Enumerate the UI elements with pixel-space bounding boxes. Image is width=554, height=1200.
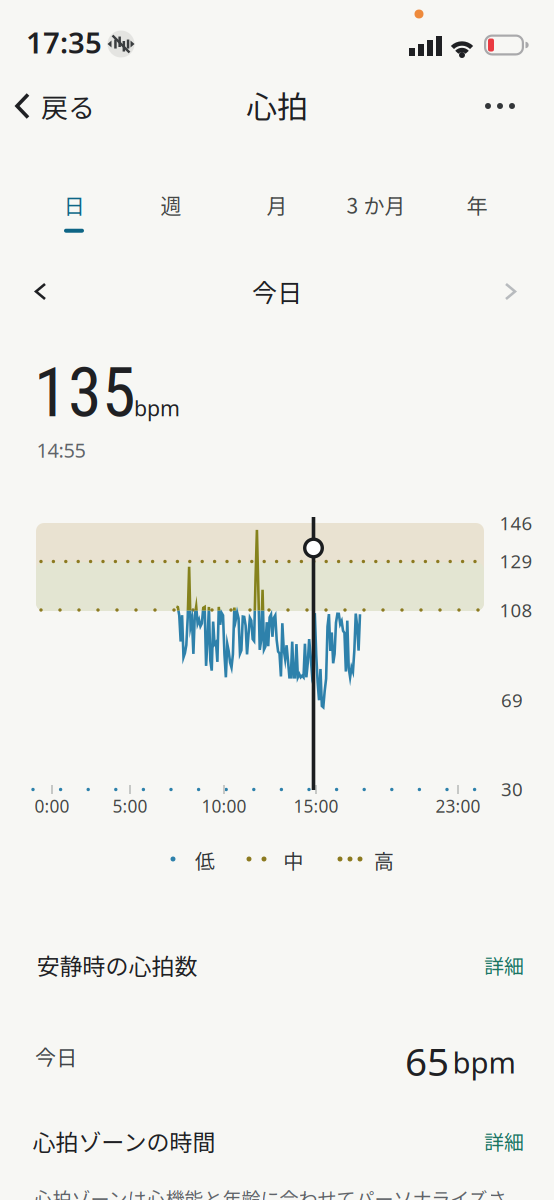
staticText: bpm <box>134 394 180 422</box>
button[interactable]: 詳細 <box>478 1120 530 1161</box>
staticText: 安静時の心拍数 <box>36 948 197 982</box>
button[interactable]: 週 <box>150 189 191 233</box>
staticText: bpm <box>452 1042 515 1081</box>
staticText: 146 <box>499 511 532 535</box>
staticText: 中 <box>283 845 303 874</box>
staticText: 日 <box>63 189 84 220</box>
staticText: 135 <box>34 353 136 433</box>
button[interactable]: 日 <box>53 189 94 233</box>
button[interactable]: 月 <box>256 189 297 233</box>
staticText: 今日 <box>35 1041 77 1071</box>
staticText: 129 <box>499 549 532 573</box>
staticText: 23:00 <box>435 794 480 817</box>
button[interactable]: その他のオプション <box>477 95 523 117</box>
staticText: 詳細 <box>484 950 524 979</box>
button[interactable]: 次の日 <box>493 272 527 312</box>
staticText: 69 <box>501 688 523 712</box>
staticText: 心拍ゾーンの時間 <box>32 1124 215 1158</box>
button[interactable]: 戻る <box>15 86 95 126</box>
staticText: 週 <box>160 189 181 220</box>
staticText: 10:00 <box>201 794 246 817</box>
button[interactable]: 詳細 <box>478 944 530 985</box>
button[interactable]: 3 か月 <box>336 189 415 233</box>
staticText: 5:00 <box>112 794 147 817</box>
button[interactable]: 年 <box>456 189 497 233</box>
staticText: 65 <box>405 1035 449 1087</box>
button[interactable]: 前の日 <box>24 272 58 312</box>
staticText: 低 <box>195 845 215 874</box>
staticText: 月 <box>266 189 287 220</box>
staticText: 今日 <box>252 273 302 309</box>
staticText: 年 <box>466 189 487 220</box>
staticText: 15:00 <box>293 794 338 817</box>
staticText: 108 <box>499 598 532 622</box>
staticText: 心拍 <box>246 83 308 127</box>
staticText: 14:55 <box>36 437 85 463</box>
staticText: 30 <box>501 777 523 801</box>
staticText: 高 <box>374 845 394 874</box>
staticText: 3 か月 <box>346 189 405 220</box>
staticText: 0:00 <box>34 794 69 817</box>
staticText: 戻る <box>41 86 95 126</box>
staticText: 詳細 <box>484 1126 524 1155</box>
staticText: 17:35 <box>26 22 102 61</box>
staticText: 心拍ゾーンは心機能と年齢に合わせてパーソナライズさ <box>33 1184 506 1200</box>
